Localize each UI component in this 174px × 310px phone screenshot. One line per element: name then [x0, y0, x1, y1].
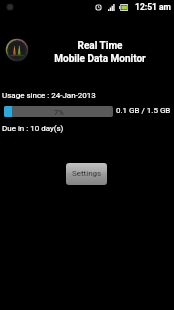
staticText: 12:51 am	[135, 2, 171, 12]
other: App icon	[5, 38, 29, 62]
staticText: Settings	[72, 169, 102, 178]
staticText: Real Time Mobile Data Monitor	[30, 40, 170, 64]
staticText: Due in : 10 day(s)	[2, 124, 64, 133]
staticText: 7%	[54, 108, 64, 117]
button[interactable]: Settings	[66, 163, 107, 185]
staticText: Usage since : 24-Jan-2013	[2, 91, 96, 100]
staticText: 0.1 GB / 1.5 GB	[116, 106, 171, 115]
